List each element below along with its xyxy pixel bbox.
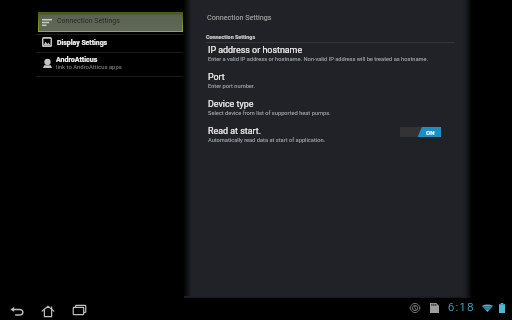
button[interactable]: Port [204,70,457,97]
staticText: Read at start. [208,126,262,136]
staticText: 6:18 [448,301,476,314]
button[interactable]: Read at start. [204,124,457,151]
staticText: Enter a valid IP address or hostname. No… [208,56,428,63]
staticText: link to AndroAtticus apps [56,64,122,71]
staticText: Connection Settings [207,13,272,21]
button[interactable]: AndroAtticus [38,53,183,76]
button[interactable]: Connection Settings [38,12,183,32]
staticText: AndroAtticus [56,56,98,64]
button[interactable]: Home [36,298,60,320]
button[interactable]: Recent apps [67,298,91,320]
staticText: Enter port number. [208,83,255,90]
button[interactable]: Device type [204,97,457,124]
staticText: Device type [208,99,254,109]
button[interactable]: Display Settings [38,35,183,52]
staticText: Automatically read data at start of appl… [208,137,326,144]
button[interactable]: Back [4,298,28,320]
staticText: IP address or hostname [208,45,303,55]
staticText: Connection Settings [206,34,256,40]
staticText: Display Settings [57,39,108,47]
staticText: Port [208,72,225,82]
button[interactable]: ON [400,127,441,137]
button[interactable]: IP address or hostname [204,43,457,70]
staticText: ON [426,129,435,136]
staticText: Select device from list of supported hea… [208,110,331,117]
staticText: Connection Settings [57,17,120,25]
